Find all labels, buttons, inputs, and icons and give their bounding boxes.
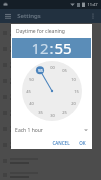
button[interactable]: 12 [31,38,49,58]
staticText: 30 [50,113,55,118]
staticText: 00 [50,65,55,70]
staticText: 55 [54,38,72,58]
button[interactable]: Open navigation drawer [3,11,13,21]
staticText: 45 [26,89,31,94]
staticText: Each 1 hour [15,127,43,134]
staticText: 10 [71,77,76,82]
button[interactable]: Minute picker [22,61,82,121]
button[interactable]: CANCEL [49,138,73,148]
staticText: 05 [62,68,67,73]
button[interactable]: 55 [54,38,72,58]
staticText: 55 [38,68,43,73]
button[interactable]: More options [88,11,98,21]
staticText: 50 [29,77,34,82]
staticText: 15 [74,89,79,94]
staticText: 35 [38,110,43,115]
staticText: OK [79,140,86,146]
staticText: 40 [29,101,34,106]
staticText: Settings [17,12,41,20]
staticText: 11:47 [87,2,98,7]
button[interactable]: OK [76,138,89,148]
button[interactable]: Each 1 hour [11,124,92,136]
staticText: 25 [62,110,67,115]
staticText: CANCEL [52,140,70,146]
staticText: 20 [71,101,76,106]
staticText: : [49,38,54,58]
staticText: Daytime for cleaning [16,28,65,35]
staticText: 12 [31,38,49,58]
